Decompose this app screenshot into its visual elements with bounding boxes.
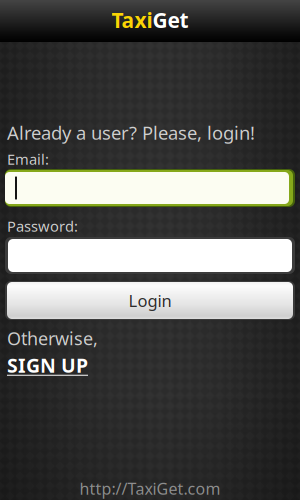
button[interactable]: SIGN UP <box>7 352 88 378</box>
staticText: SIGN UP <box>7 352 88 378</box>
staticText: Otherwise, <box>7 326 98 350</box>
staticText: Taxi <box>111 6 152 34</box>
button[interactable]: Password <box>5 237 295 274</box>
staticText: Login <box>128 289 171 312</box>
staticText: http://TaxiGet.com <box>79 478 220 499</box>
staticText: Already a user? Please, login! <box>7 120 255 145</box>
button[interactable]: Email <box>5 169 295 207</box>
staticText: Password: <box>7 216 78 236</box>
staticText: Get <box>152 6 188 34</box>
staticText: Email: <box>7 149 49 169</box>
button[interactable]: Login <box>5 281 295 320</box>
